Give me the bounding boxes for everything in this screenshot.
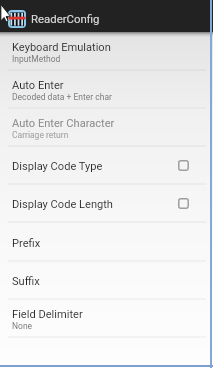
button[interactable]: Suffix [0, 261, 213, 299]
staticText: Auto Enter [12, 79, 64, 92]
button[interactable]: Display Code Length [0, 184, 213, 222]
staticText: ReaderConfig [31, 12, 100, 25]
staticText: Display Code Length [12, 198, 113, 211]
staticText: Auto Enter Character [12, 117, 115, 130]
staticText: Carriage return [12, 130, 69, 140]
staticText: Field Delimiter [12, 308, 83, 321]
button[interactable]: App icon [8, 10, 26, 28]
button[interactable]: Auto Enter Character [0, 108, 213, 146]
staticText: InputMethod [12, 54, 61, 64]
staticText: Display Code Type [12, 160, 103, 173]
staticText: Prefix [12, 237, 41, 250]
staticText: Keyboard Emulation [12, 41, 111, 54]
button[interactable]: Keyboard Emulation [0, 32, 213, 70]
staticText: None [12, 321, 33, 331]
button[interactable]: Auto Enter [0, 70, 213, 108]
staticText: Suffix [12, 275, 40, 288]
button[interactable]: Field Delimiter [0, 299, 213, 337]
button[interactable]: Display Code Type [0, 146, 213, 184]
button[interactable]: Prefix [0, 223, 213, 261]
staticText: Decoded data + Enter char [12, 92, 112, 102]
